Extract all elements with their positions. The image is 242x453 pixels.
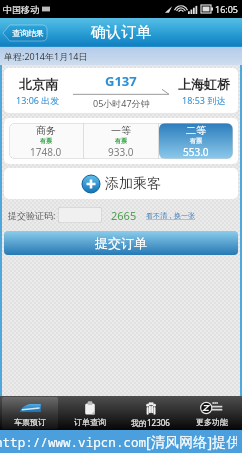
staticText: 一等 [111, 124, 131, 137]
staticText: 13:06 出发 [16, 94, 60, 106]
staticText: 车票预订 [14, 417, 46, 427]
button[interactable]: 提交订单 [4, 231, 238, 255]
staticText: 2665 [111, 208, 137, 223]
staticText: 更多功能 [196, 417, 228, 427]
button[interactable] [58, 207, 102, 223]
staticText: 有票 [40, 137, 52, 145]
staticText: 二等 [186, 124, 206, 137]
staticText: 16:05 [215, 3, 239, 15]
staticText: G137 [105, 72, 137, 90]
staticText: 商务 [36, 124, 56, 137]
button[interactable]: 更多功能 [181, 396, 242, 430]
button[interactable]: 车票预订 [0, 396, 60, 430]
staticText: 订单查询 [74, 417, 106, 427]
staticText: 1748.0 [30, 145, 62, 159]
staticText: 有票 [190, 137, 202, 145]
staticText: 北京南 [19, 76, 58, 92]
button[interactable]: 添加乘客 [4, 168, 238, 199]
staticText: 单程:2014年1月14日 [4, 50, 88, 62]
staticText: 05小时47分钟 [93, 97, 150, 109]
button[interactable]: 查询结果 [3, 25, 47, 41]
staticText: 提交订单 [95, 235, 147, 251]
staticText: 933.0 [108, 145, 134, 159]
button[interactable]: 我的12306 [120, 396, 181, 430]
staticText: http://www.vipcn.com[清风网络]提供 [0, 432, 237, 451]
staticText: 看不清，换一张 [146, 211, 195, 220]
button[interactable]: 二等 [159, 123, 233, 159]
button[interactable]: 商务 [9, 123, 83, 159]
staticText: 有票 [115, 137, 127, 145]
button[interactable]: 订单查询 [60, 396, 120, 430]
staticText: 上海虹桥 [178, 76, 230, 92]
button[interactable]: 一等 [84, 123, 158, 159]
staticText: 提交验证码: [8, 209, 56, 221]
staticText: 18:53 到达 [182, 94, 226, 106]
staticText: 我的12306 [131, 417, 170, 428]
staticText: 553.0 [183, 145, 209, 159]
staticText: 确认订单 [91, 23, 151, 42]
button[interactable]: 看不清，换一张 [146, 211, 195, 220]
staticText: 添加乘客 [105, 175, 161, 193]
staticText: 查询结果 [12, 28, 44, 38]
staticText: 中国移动 [3, 4, 39, 15]
